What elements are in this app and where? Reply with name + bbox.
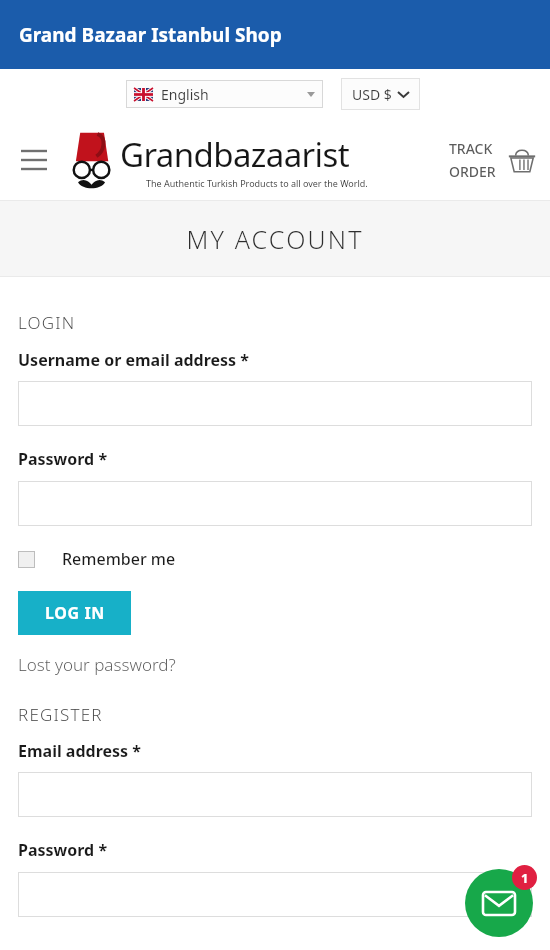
button[interactable]: USD $ bbox=[341, 78, 420, 110]
button[interactable]: Grandbazaarist bbox=[64, 129, 449, 191]
staticText: USD $ bbox=[352, 85, 392, 104]
button[interactable] bbox=[18, 481, 532, 526]
staticText: REGISTER bbox=[18, 703, 103, 726]
staticText: Username or email address * bbox=[18, 349, 249, 371]
button[interactable] bbox=[18, 772, 532, 817]
button[interactable]: Lost your password? bbox=[18, 653, 176, 676]
staticText: English bbox=[161, 85, 209, 104]
staticText: LOGIN bbox=[18, 311, 76, 334]
button[interactable] bbox=[18, 872, 532, 917]
staticText: ORDER bbox=[449, 162, 496, 181]
button[interactable]: Menu bbox=[12, 138, 56, 182]
staticText: The Authentic Turkish Products to all ov… bbox=[146, 177, 368, 189]
button[interactable]: English bbox=[126, 80, 323, 108]
button[interactable] bbox=[18, 381, 532, 426]
staticText: LOG IN bbox=[45, 602, 105, 624]
button[interactable]: LOG IN bbox=[18, 591, 131, 635]
staticText: 1 bbox=[521, 869, 529, 887]
staticText: TRACK bbox=[449, 139, 493, 158]
button[interactable]: TRACK bbox=[449, 139, 496, 181]
button[interactable]: Remember me bbox=[18, 548, 176, 570]
button[interactable]: Cart bbox=[502, 140, 542, 180]
button[interactable]: Open chat bbox=[465, 869, 533, 937]
staticText: Password * bbox=[18, 448, 108, 470]
staticText: Grand Bazaar Istanbul Shop bbox=[19, 22, 282, 48]
staticText: Remember me bbox=[62, 548, 176, 570]
staticText: MY ACCOUNT bbox=[186, 222, 364, 256]
staticText: Password * bbox=[18, 839, 108, 861]
staticText: Grandbazaarist bbox=[120, 132, 350, 177]
staticText: Email address * bbox=[18, 740, 141, 762]
